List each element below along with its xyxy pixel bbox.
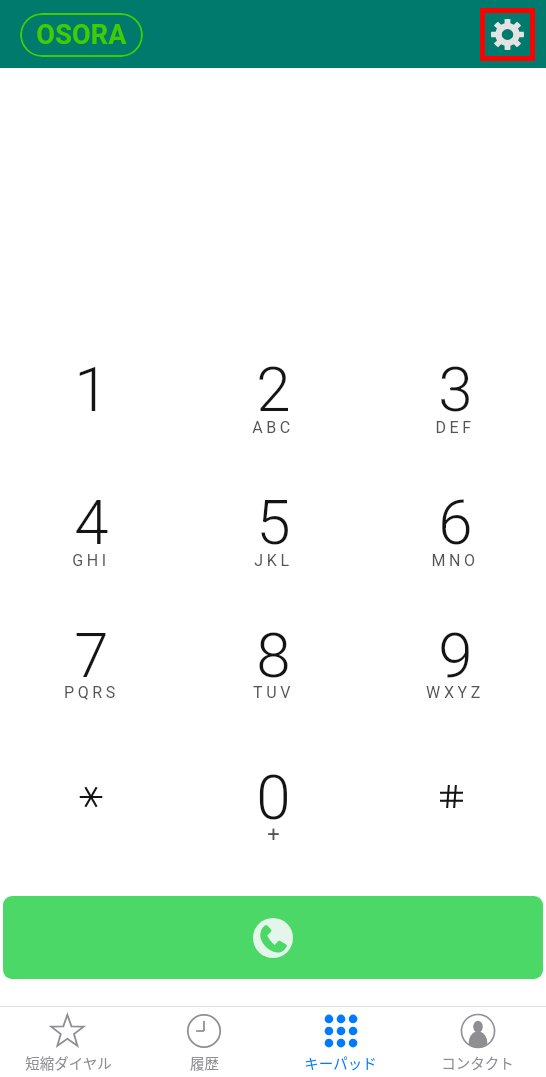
button[interactable] — [0, 761, 182, 871]
button[interactable]: 1 — [0, 353, 182, 463]
button[interactable]: コンタクト — [409, 1007, 546, 1077]
staticText: コンタクト — [441, 1052, 514, 1073]
staticText: 3 — [438, 353, 473, 426]
staticText: PQRS — [64, 683, 119, 702]
staticText: 短縮ダイヤル — [25, 1052, 112, 1073]
button[interactable]: 4 — [0, 486, 182, 596]
button[interactable]: Call — [3, 896, 543, 979]
staticText: + — [267, 822, 280, 848]
staticText: DEF — [435, 418, 475, 437]
staticText: 1 — [74, 353, 109, 426]
button[interactable]: キーパッド — [272, 1007, 409, 1077]
button[interactable]: 7 — [0, 619, 182, 729]
staticText: WXYZ — [426, 683, 484, 702]
button[interactable]: 短縮ダイヤル — [0, 1007, 136, 1077]
button[interactable]: 6 — [364, 486, 546, 596]
button[interactable]: 2 — [182, 353, 364, 463]
staticText: ABC — [252, 418, 294, 437]
staticText: キーパッド — [304, 1052, 377, 1073]
button[interactable]: 8 — [182, 619, 364, 729]
staticText: 6 — [438, 486, 473, 559]
staticText: 7 — [74, 619, 109, 692]
staticText: GHI — [72, 551, 110, 570]
staticText: 0 — [256, 761, 291, 834]
button[interactable]: OSORA — [20, 13, 143, 57]
button[interactable] — [364, 761, 546, 871]
button[interactable]: 履歴 — [136, 1007, 272, 1077]
staticText: JKL — [254, 551, 293, 570]
staticText: 9 — [438, 619, 473, 692]
staticText: 2 — [256, 353, 291, 426]
button[interactable]: Settings — [480, 8, 535, 61]
button[interactable]: 5 — [182, 486, 364, 596]
staticText: MNO — [431, 551, 479, 570]
staticText: 8 — [256, 619, 291, 692]
button[interactable]: 3 — [364, 353, 546, 463]
button[interactable]: 0 — [182, 761, 364, 871]
staticText: OSORA — [36, 19, 127, 51]
staticText: 4 — [74, 486, 109, 559]
button[interactable]: 9 — [364, 619, 546, 729]
staticText: 5 — [256, 486, 291, 559]
staticText: TUV — [253, 683, 294, 702]
staticText: 履歴 — [190, 1052, 219, 1073]
